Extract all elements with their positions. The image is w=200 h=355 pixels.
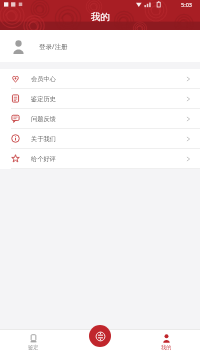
staticText: 鉴定历史 bbox=[31, 95, 56, 103]
button[interactable]: 鉴定历史 bbox=[0, 89, 200, 108]
button[interactable]: 扫一扫鉴定 bbox=[89, 325, 111, 347]
staticText: 5:03 bbox=[181, 1, 192, 8]
staticText: 给个好评 bbox=[31, 155, 56, 163]
button[interactable]: 鉴定 bbox=[0, 332, 66, 353]
staticText: 我的 bbox=[91, 11, 110, 23]
staticText: 问题反馈 bbox=[31, 115, 56, 123]
button[interactable]: 会员中心 bbox=[0, 69, 200, 88]
staticText: 登录/注册 bbox=[39, 42, 68, 51]
staticText: 鉴定 bbox=[28, 344, 39, 351]
staticText: 关于我们 bbox=[31, 135, 56, 143]
button[interactable]: 关于我们 bbox=[0, 129, 200, 148]
staticText: 我的 bbox=[161, 344, 172, 351]
button[interactable]: 我的 bbox=[133, 332, 200, 353]
button[interactable]: 登录/注册 bbox=[0, 30, 200, 62]
button[interactable]: 给个好评 bbox=[0, 149, 200, 168]
staticText: 会员中心 bbox=[31, 75, 56, 83]
button[interactable]: 问题反馈 bbox=[0, 109, 200, 128]
